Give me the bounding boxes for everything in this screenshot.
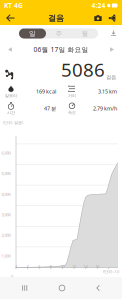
staticText: 2 (15, 264, 17, 269)
staticText: 5086 (61, 57, 105, 82)
button[interactable]: Recent apps (12, 279, 37, 297)
staticText: 일 (29, 29, 36, 38)
staticText: 거리 (68, 93, 76, 98)
staticText: 5,000 (1, 171, 10, 176)
staticText: 14 (84, 264, 88, 269)
staticText: 47 분 (44, 105, 56, 112)
button[interactable]: Back (87, 279, 110, 297)
button[interactable]: Back (0, 11, 21, 25)
staticText: 주 (55, 29, 62, 38)
button[interactable]: 주 (46, 28, 72, 38)
button[interactable]: Previous day (0, 43, 20, 56)
staticText: 4,000 (1, 191, 10, 197)
staticText: 6 (38, 264, 40, 269)
button[interactable]: Share (105, 11, 122, 25)
button[interactable]: Camera (91, 11, 105, 25)
staticText: 06월 17일 화요일 (33, 45, 88, 54)
button[interactable]: 월 (72, 28, 98, 38)
staticText: 169 kcal (36, 88, 56, 95)
staticText: (단위: 걸음) (3, 120, 23, 125)
staticText: 걸음 (48, 13, 64, 23)
staticText: 8 (50, 264, 52, 269)
staticText: KT 4G (4, 1, 23, 10)
button[interactable]: Next day (102, 43, 122, 56)
staticText: 0 (11, 274, 13, 279)
staticText: 12 (72, 264, 76, 269)
staticText: 3.15 km (98, 88, 117, 95)
staticText: 2.79 km/h (93, 105, 117, 112)
staticText: 월 (81, 29, 88, 38)
staticText: 4:24 (91, 1, 105, 10)
button[interactable]: Home (49, 279, 74, 297)
staticText: 6,000 (1, 150, 10, 155)
staticText: 걸음 (106, 74, 116, 80)
staticText: 칼로리 (5, 93, 17, 98)
staticText: 시간 (7, 110, 15, 115)
button[interactable]: 일 (19, 28, 46, 38)
staticText: (단위: 시) (103, 269, 119, 274)
staticText: 10 (60, 264, 64, 269)
button[interactable]: Download (105, 26, 122, 40)
staticText: 16 (95, 264, 99, 269)
staticText: 4 (27, 264, 29, 269)
staticText: 3,000 (1, 212, 10, 217)
staticText: 속도 (68, 110, 76, 115)
staticText: 2,000 (1, 233, 10, 238)
staticText: 1,000 (1, 253, 10, 258)
